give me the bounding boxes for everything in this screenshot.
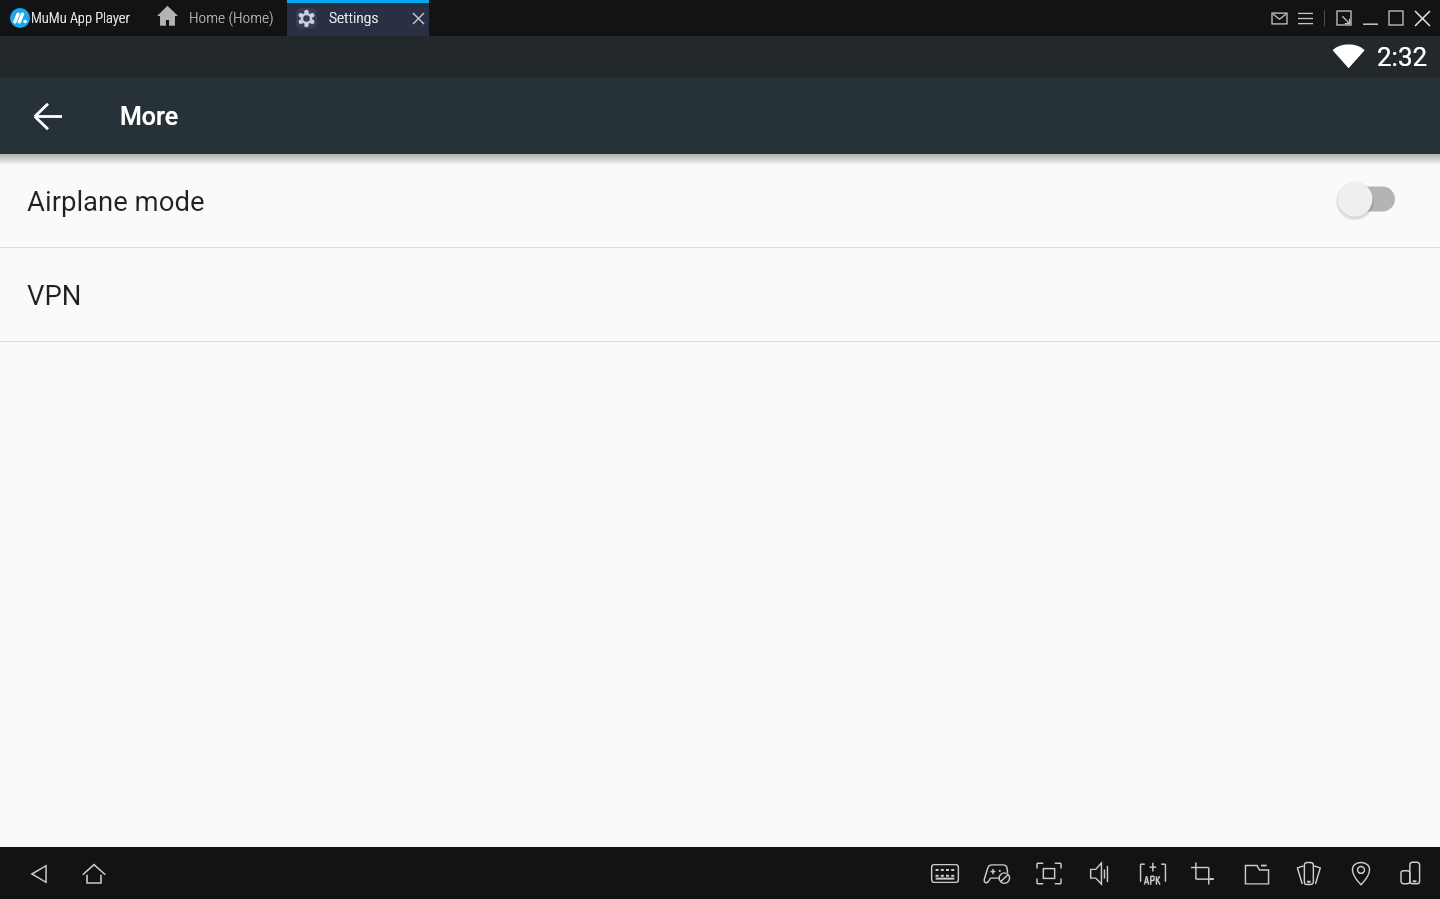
staticText: Home (Home) (189, 9, 274, 27)
staticText: 2:32 (1377, 42, 1428, 72)
button[interactable]: Keyboard (919, 847, 971, 899)
button[interactable]: Maximize (1383, 1, 1409, 35)
button[interactable]: Close (1409, 1, 1435, 35)
button[interactable]: Menu (1292, 1, 1318, 35)
button[interactable]: Airplane mode (0, 154, 1440, 247)
staticText: Settings (329, 9, 379, 27)
staticText: More (120, 102, 179, 131)
button[interactable]: Close tab (407, 7, 429, 29)
button[interactable]: File manager (1231, 847, 1283, 899)
button[interactable]: Mail (1266, 1, 1292, 35)
button[interactable]: Home (Home) (157, 0, 274, 36)
button[interactable]: Volume (1075, 847, 1127, 899)
button[interactable]: Minimize (1357, 1, 1383, 35)
staticText: Airplane mode (27, 185, 205, 217)
button[interactable]: Full screen (1023, 847, 1075, 899)
button[interactable]: Screenshot (1179, 847, 1231, 899)
button[interactable]: Home (77, 857, 110, 890)
button[interactable]: VPN (0, 248, 1440, 341)
button[interactable]: Multi window (1387, 847, 1439, 899)
staticText: MuMu App Player (31, 10, 130, 27)
button[interactable]: Disable gamepad (971, 847, 1023, 899)
button[interactable]: Back (22, 857, 55, 890)
staticText: VPN (27, 279, 82, 311)
button[interactable]: Rotate screen (1283, 847, 1335, 899)
button[interactable]: Restore down (1331, 1, 1357, 35)
button[interactable]: Airplane mode toggle (1337, 183, 1395, 219)
button[interactable]: Navigate up (0, 78, 96, 154)
button[interactable]: Install APK (1127, 847, 1179, 899)
button[interactable]: Settings (287, 0, 429, 36)
button[interactable]: Location (1335, 847, 1387, 899)
